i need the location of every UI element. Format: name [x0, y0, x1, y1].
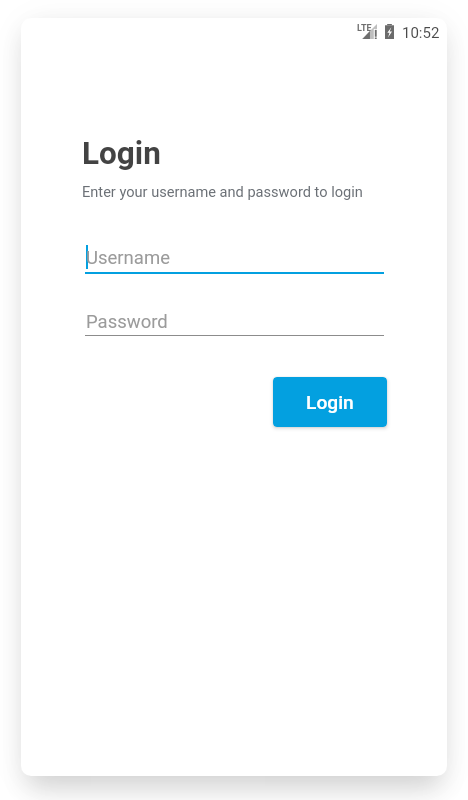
button[interactable]: Login — [273, 377, 387, 427]
staticText: Login — [82, 135, 161, 172]
staticText: Enter your username and password to logi… — [82, 183, 363, 200]
button[interactable]: Username — [85, 242, 384, 274]
staticText: Username — [86, 247, 170, 269]
staticText: LTE — [357, 23, 372, 34]
staticText: Password — [86, 311, 168, 333]
staticText: 10:52 — [402, 24, 440, 42]
staticText: Login — [306, 391, 354, 414]
button[interactable]: Password — [85, 306, 384, 338]
